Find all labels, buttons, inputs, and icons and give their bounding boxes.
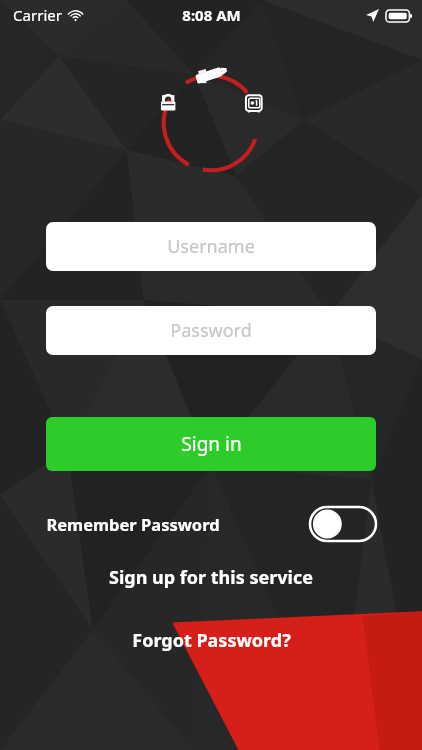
button[interactable]: Password [46, 306, 376, 355]
button[interactable]: Remember password toggle, off [310, 507, 376, 541]
staticText: Remember Password [46, 513, 220, 535]
staticText: Sign in [181, 431, 242, 457]
button[interactable]: Forgot Password? [0, 623, 422, 657]
staticText: Sign up for this service [109, 565, 313, 590]
staticText: 8:08 AM [182, 5, 241, 25]
staticText: Password [170, 318, 252, 343]
button[interactable]: Username [46, 222, 376, 271]
staticText: Username [167, 234, 255, 259]
button[interactable]: Sign in [46, 417, 376, 471]
button[interactable]: Sign up for this service [0, 560, 422, 594]
staticText: Forgot Password? [132, 628, 291, 653]
staticText: Carrier [13, 5, 62, 25]
